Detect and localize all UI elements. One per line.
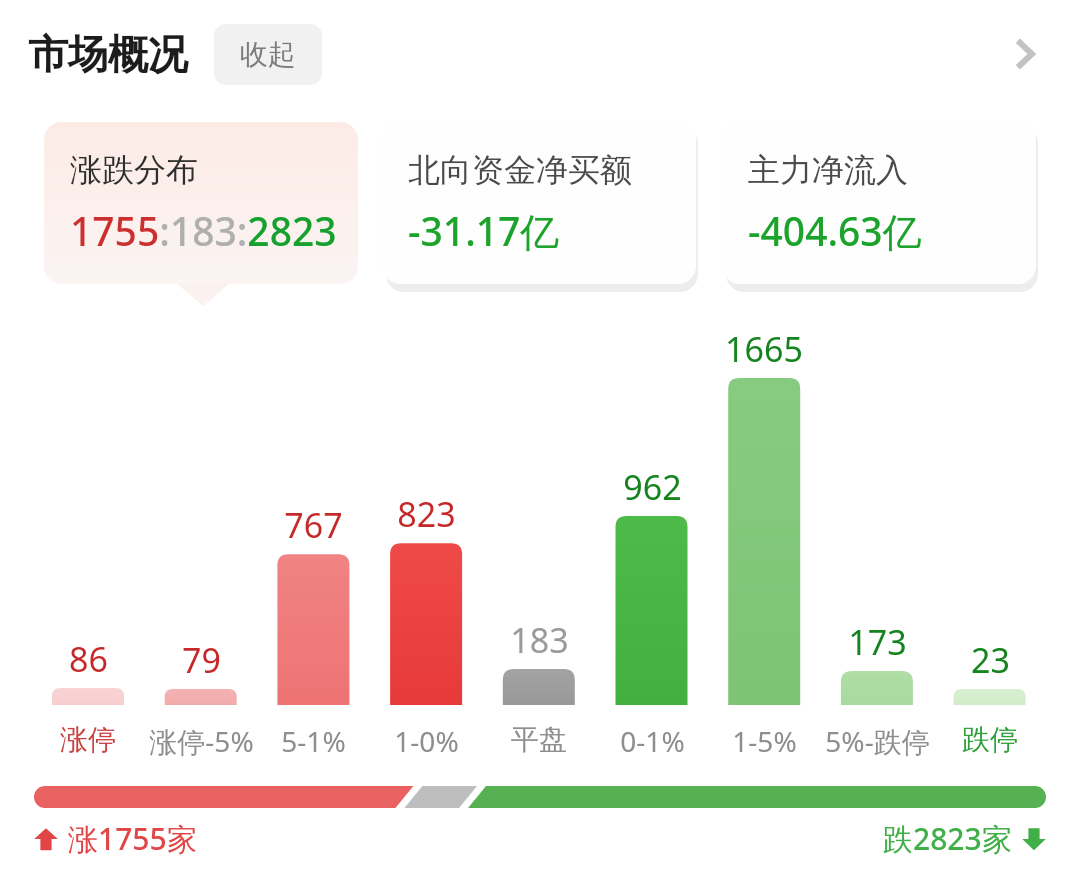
button[interactable]: 主力净流入	[722, 122, 1036, 284]
staticText: 962	[623, 464, 682, 510]
staticText: 平盘	[511, 722, 567, 757]
staticText: -404.63亿	[748, 204, 922, 257]
button[interactable]: 北向资金净买额	[382, 122, 696, 284]
staticText: 涨1755家	[68, 818, 197, 859]
staticText: 767	[284, 502, 343, 548]
staticText: 北向资金净买额	[408, 150, 632, 190]
button[interactable]: 展开详情	[986, 16, 1062, 92]
button[interactable]: 收起	[214, 24, 322, 85]
staticText: 173	[848, 619, 907, 665]
staticText: -31.17亿	[408, 204, 560, 257]
staticText: 跌2823家	[883, 818, 1012, 859]
staticText: 23	[971, 637, 1010, 683]
staticText: 5-1%	[281, 722, 346, 760]
staticText: 涨停	[60, 722, 116, 757]
staticText: 79	[182, 637, 221, 683]
staticText: 涨跌分布	[70, 150, 198, 190]
staticText: 跌停	[962, 722, 1018, 757]
staticText: 183	[510, 617, 569, 663]
staticText: 1755:183:2823	[70, 204, 337, 257]
staticText: 市场概况	[28, 29, 188, 79]
staticText: 涨停-5%	[149, 722, 254, 760]
staticText: 86	[69, 636, 108, 682]
button[interactable]: 涨跌分布	[44, 122, 358, 284]
staticText: 0-1%	[620, 722, 685, 760]
staticText: 1-0%	[394, 722, 459, 760]
staticText: 823	[397, 491, 456, 537]
staticText: 收起	[240, 37, 296, 72]
staticText: 5%-跌停	[825, 722, 930, 760]
staticText: 1665	[725, 326, 803, 372]
staticText: 主力净流入	[748, 150, 908, 190]
staticText: 1-5%	[732, 722, 797, 760]
